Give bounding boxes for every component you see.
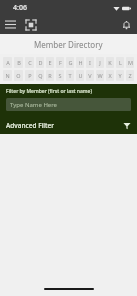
button[interactable]: K [106, 57, 114, 68]
button[interactable]: I [86, 57, 94, 68]
button[interactable]: N [3, 70, 12, 81]
staticText: L [119, 59, 122, 66]
staticText: Z [128, 72, 132, 79]
staticText: W [97, 72, 103, 79]
button[interactable]: L [116, 57, 124, 68]
button[interactable]: A [3, 57, 12, 68]
staticText: Type Name Here [10, 101, 57, 109]
staticText: I [89, 59, 91, 66]
staticText: Q [38, 72, 43, 79]
staticText: B [17, 59, 21, 66]
button[interactable]: Notifications [115, 15, 137, 34]
button[interactable]: H [76, 57, 84, 68]
button[interactable]: R [46, 70, 54, 81]
button[interactable]: Advanced Filter [6, 118, 131, 133]
button[interactable]: E [46, 57, 54, 68]
button[interactable]: G [66, 57, 74, 68]
button[interactable]: Scan code [20, 15, 42, 34]
button[interactable]: M [126, 57, 134, 68]
button[interactable]: P [25, 70, 34, 81]
button[interactable]: O [14, 70, 23, 81]
button[interactable]: U [76, 70, 84, 81]
button[interactable]: B [14, 57, 23, 68]
staticText: P [28, 72, 32, 79]
button[interactable]: V [86, 70, 94, 81]
staticText: A [6, 59, 10, 66]
staticText: F [59, 59, 62, 66]
staticText: U [78, 72, 83, 79]
button[interactable]: D [36, 57, 44, 68]
staticText: Y [118, 72, 122, 79]
button[interactable]: Menu [0, 15, 20, 34]
button[interactable]: Y [116, 70, 124, 81]
button[interactable]: T [66, 70, 74, 81]
button[interactable]: Z [126, 70, 134, 81]
staticText: J [99, 59, 101, 66]
staticText: E [48, 59, 52, 66]
staticText: N [5, 72, 10, 79]
button[interactable]: Q [36, 70, 44, 81]
staticText: X [108, 72, 112, 79]
staticText: C [28, 59, 32, 66]
staticText: S [58, 72, 62, 79]
staticText: M [128, 59, 133, 66]
button[interactable]: F [56, 57, 64, 68]
staticText: K [108, 59, 112, 66]
staticText: V [88, 72, 92, 79]
staticText: R [48, 72, 52, 79]
staticText: Filter by Member (first or last name) [6, 88, 92, 95]
staticText: Member Directory [34, 39, 103, 50]
button[interactable]: X [106, 70, 114, 81]
staticText: T [68, 72, 72, 79]
staticText: 4:06 [13, 3, 27, 13]
staticText: Advanced Filter [6, 121, 55, 130]
button[interactable]: S [56, 70, 64, 81]
staticText: H [78, 59, 83, 66]
staticText: D [38, 59, 43, 66]
button[interactable]: Type Name Here [6, 98, 131, 111]
button[interactable]: J [96, 57, 104, 68]
button[interactable]: W [96, 70, 104, 81]
staticText: O [16, 72, 21, 79]
button[interactable]: C [25, 57, 34, 68]
staticText: G [68, 59, 73, 66]
